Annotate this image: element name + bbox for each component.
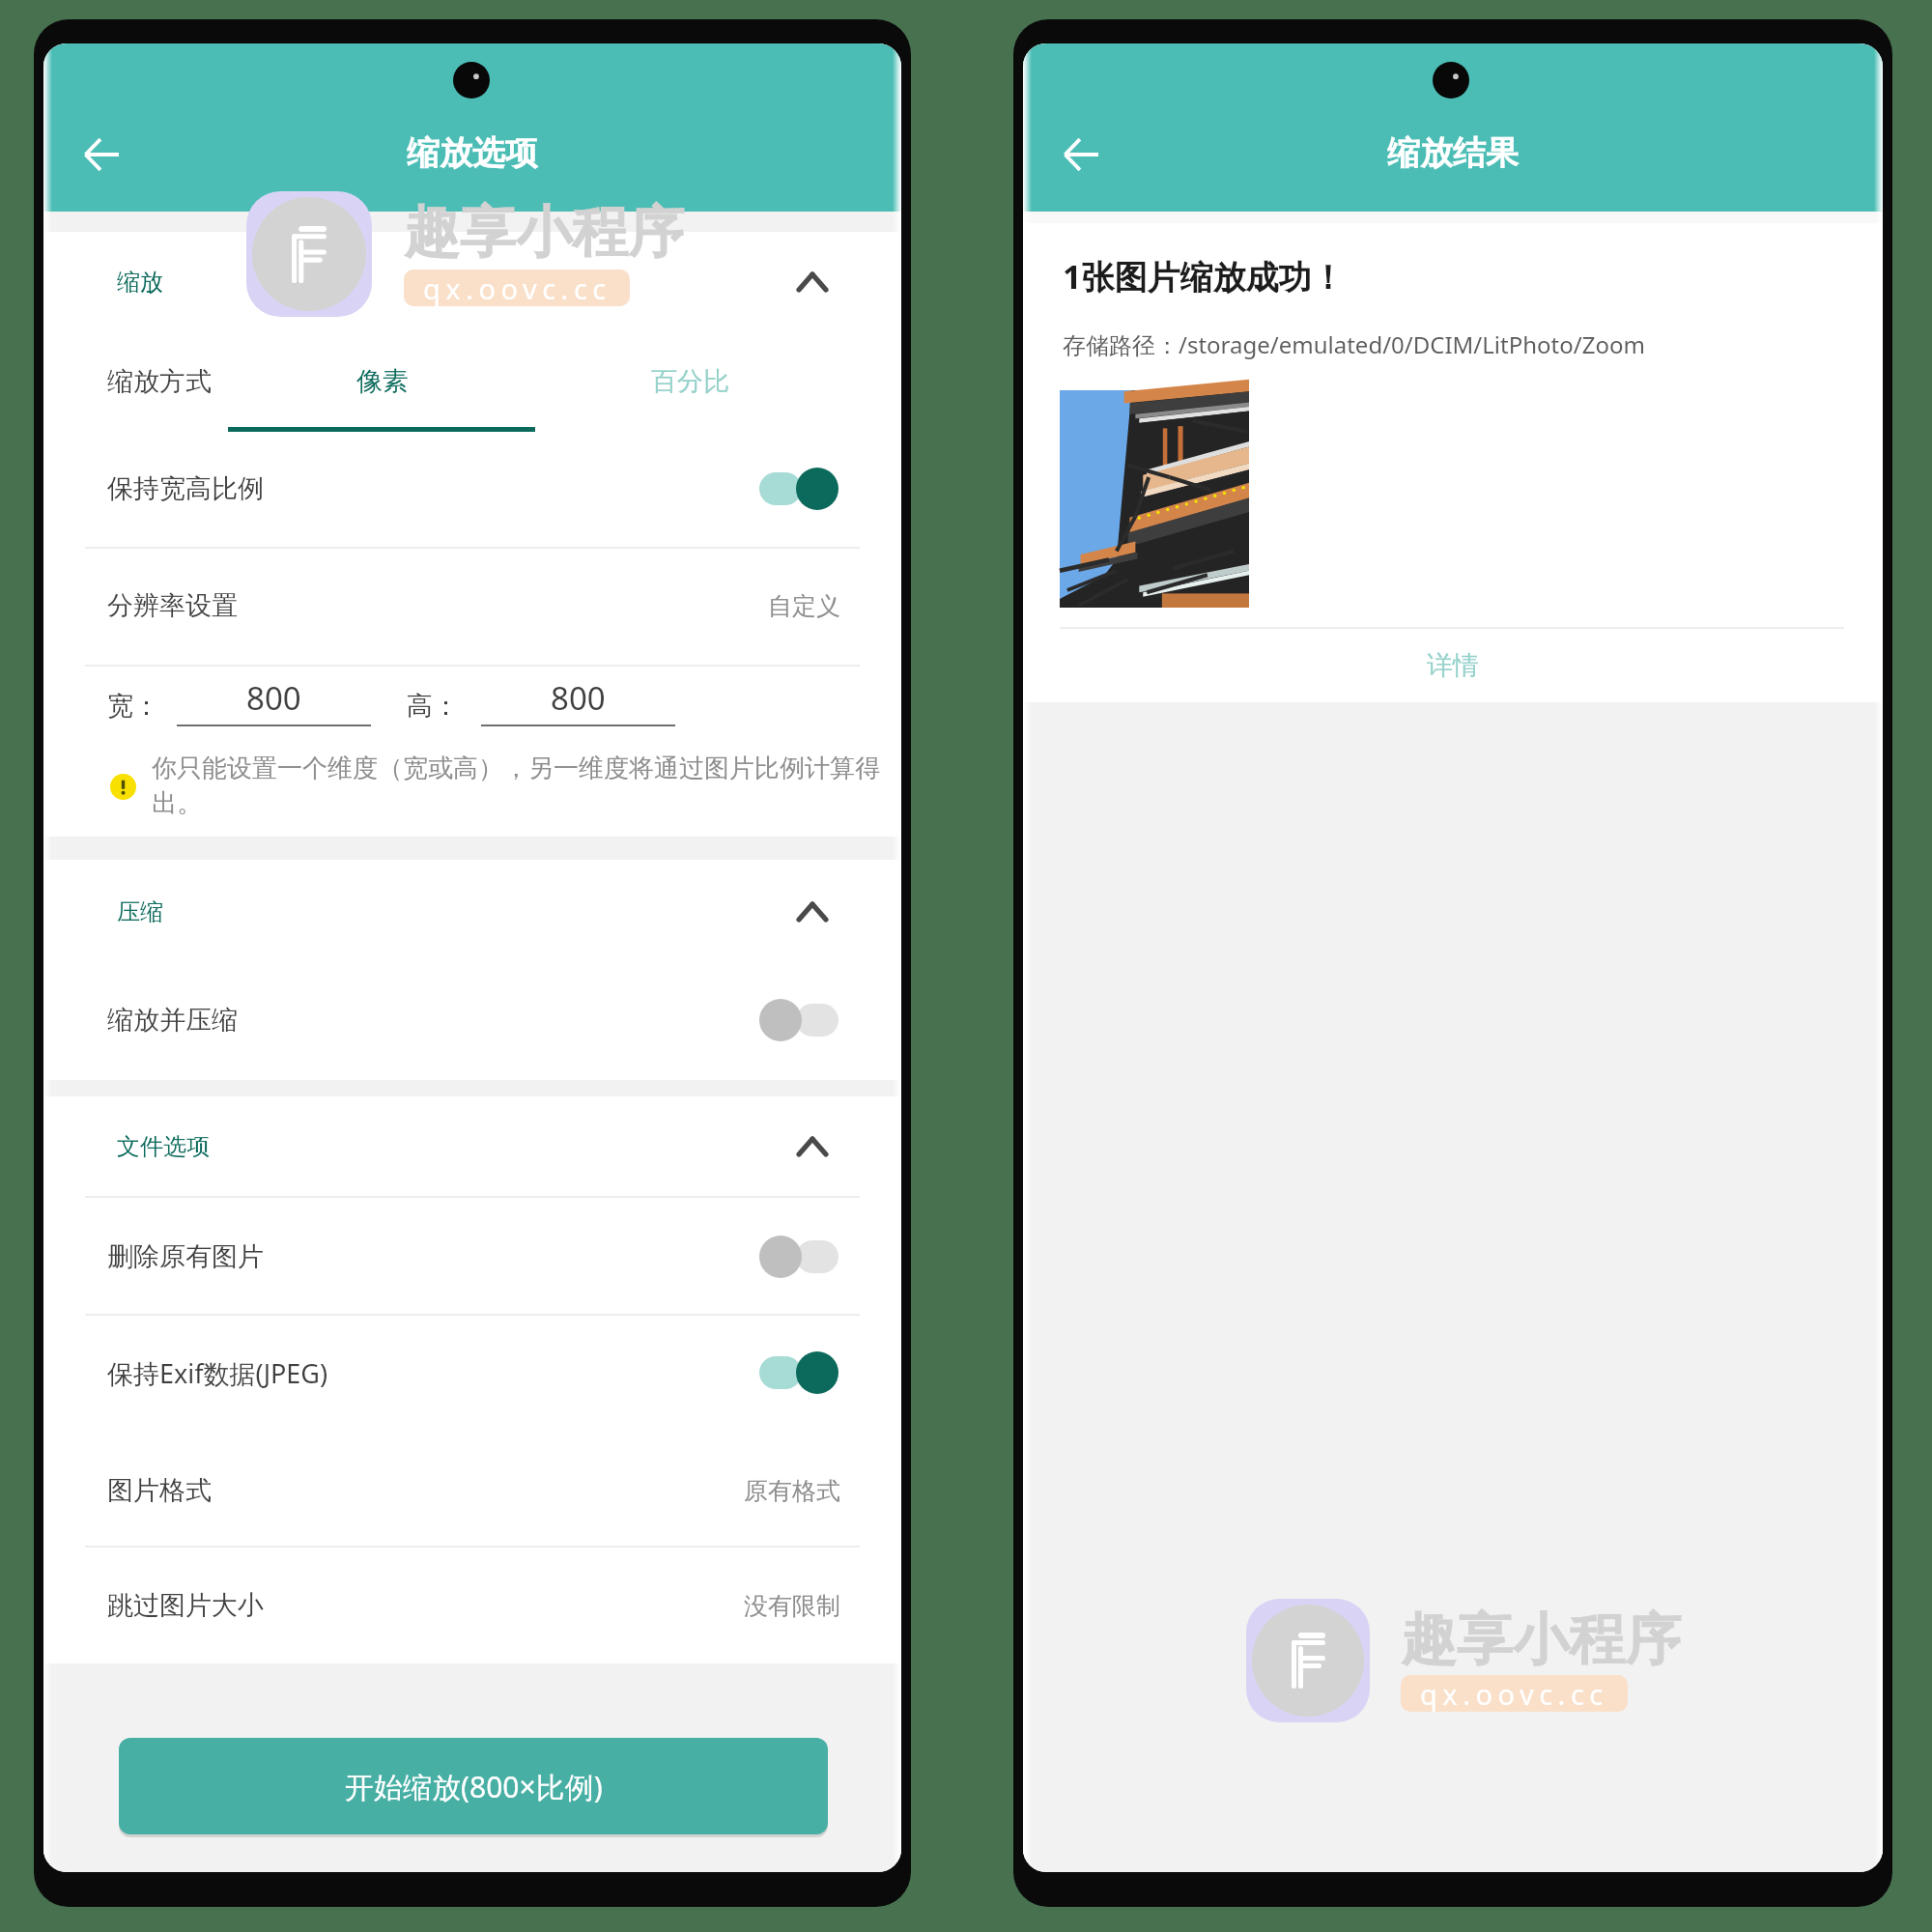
- staticText: 跳过图片大小: [107, 1589, 264, 1622]
- button[interactable]: [759, 999, 838, 1041]
- button[interactable]: 缩放并压缩: [43, 986, 901, 1054]
- staticText: 缩放结果: [1023, 132, 1883, 174]
- staticText: qx.oovc.cc: [423, 270, 611, 306]
- staticText: 分辨率设置: [107, 589, 238, 622]
- staticText: 原有格式: [744, 1476, 840, 1506]
- button[interactable]: [759, 1236, 838, 1278]
- staticText: 像素: [356, 365, 409, 398]
- staticText: 百分比: [651, 365, 729, 398]
- staticText: 详情: [1427, 649, 1479, 682]
- button[interactable]: Back: [1053, 127, 1109, 183]
- staticText: 趣享小程序: [1401, 1605, 1681, 1675]
- staticText: 高：: [407, 690, 459, 723]
- button[interactable]: 像素: [229, 335, 535, 428]
- button[interactable]: [759, 1351, 838, 1394]
- button[interactable]: 800: [177, 676, 371, 726]
- button[interactable]: 跳过图片大小: [43, 1572, 901, 1639]
- staticText: 800: [246, 676, 301, 720]
- staticText: 压缩: [117, 897, 163, 926]
- staticText: 保持Exif数据(JPEG): [107, 1355, 328, 1391]
- button[interactable]: 压缩: [43, 871, 901, 952]
- staticText: 文件选项: [117, 1132, 210, 1161]
- button[interactable]: 详情: [1023, 637, 1883, 695]
- button[interactable]: Back: [73, 127, 129, 183]
- button[interactable]: [759, 468, 838, 510]
- button[interactable]: 删除原有图片: [43, 1223, 901, 1291]
- staticText: 趣享小程序: [404, 197, 684, 268]
- staticText: 删除原有图片: [107, 1240, 264, 1273]
- staticText: 缩放选项: [43, 132, 901, 174]
- staticText: 缩放: [117, 268, 163, 297]
- staticText: qx.oovc.cc: [1420, 1675, 1608, 1712]
- staticText: 缩放方式: [107, 365, 212, 398]
- staticText: 保持宽高比例: [107, 472, 264, 505]
- button[interactable]: 保持宽高比例: [43, 455, 901, 523]
- button[interactable]: 开始缩放(800×比例): [119, 1738, 828, 1834]
- staticText: 800: [551, 676, 606, 720]
- staticText: 你只能设置一个维度（宽或高），另一维度将通过图片比例计算得出。: [152, 753, 897, 819]
- button[interactable]: 分辨率设置: [43, 572, 901, 639]
- staticText: 开始缩放(800×比例): [345, 1767, 603, 1806]
- button[interactable]: 保持Exif数据(JPEG): [43, 1339, 901, 1406]
- staticText: 存储路径：/storage/emulated/0/DCIM/LitPhoto/Z…: [1063, 328, 1645, 360]
- staticText: 1张图片缩放成功！: [1063, 254, 1345, 298]
- button[interactable]: 800: [481, 676, 675, 726]
- staticText: 缩放并压缩: [107, 1004, 238, 1037]
- button[interactable]: 文件选项: [43, 1106, 901, 1187]
- staticText: 宽：: [107, 690, 159, 723]
- button[interactable]: 图片格式: [43, 1457, 901, 1524]
- staticText: 没有限制: [744, 1591, 840, 1621]
- staticText: 自定义: [768, 591, 840, 621]
- staticText: 图片格式: [107, 1474, 212, 1507]
- button[interactable]: 百分比: [550, 335, 830, 428]
- button[interactable]: 缩放: [43, 241, 901, 323]
